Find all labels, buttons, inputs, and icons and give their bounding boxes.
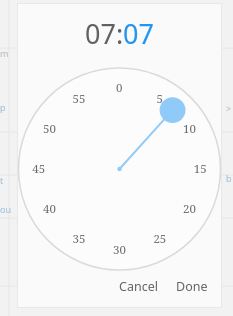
staticText: Cancel [119, 278, 158, 295]
staticText: ou [0, 203, 12, 215]
staticText: t [0, 174, 4, 186]
staticText: > [226, 102, 232, 114]
button[interactable]: Minute clock dial [17, 66, 222, 272]
staticText: p [0, 101, 6, 113]
button[interactable]: Cancel [112, 273, 165, 300]
staticText: m [0, 47, 9, 59]
button[interactable]: 07:07 [77, 14, 163, 53]
button[interactable]: Done [169, 273, 215, 300]
staticText: Done [176, 278, 208, 295]
staticText: b [226, 172, 232, 184]
